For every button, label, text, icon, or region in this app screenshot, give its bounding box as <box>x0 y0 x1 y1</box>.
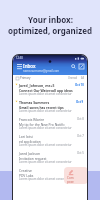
staticText: Oct 9 <box>76 100 84 104</box>
staticText: Lorem ipsum dolor sit amet consectetur e… <box>19 126 76 130</box>
button[interactable]: Compose <box>64 167 87 184</box>
staticText: Gmail saves has recent tips <box>19 105 64 109</box>
button[interactable]: Creative <box>13 166 87 183</box>
staticText: Compose <box>67 176 75 184</box>
staticText: Your inbox: <box>28 14 73 25</box>
button[interactable]: Thomas Summers <box>13 98 87 115</box>
staticText: Thomas Summers <box>19 100 50 105</box>
button[interactable]: Compose <box>77 62 85 70</box>
button[interactable]: Jared, Johnson, me+5 <box>13 81 87 98</box>
staticText: Unread <box>68 76 78 80</box>
button[interactable]: Jared Jackson <box>13 149 87 166</box>
staticText: Oct 5 <box>77 151 84 155</box>
button[interactable]: Francois Ribeire <box>13 115 87 132</box>
staticText: Inbox <box>23 63 36 69</box>
staticText: name.surname@gmail.com <box>23 69 60 73</box>
staticText: Lorem ipsum dolor sit amet consectetur e… <box>19 92 74 96</box>
staticText: All <box>81 76 84 80</box>
staticText: Lori lotsi <box>19 134 33 139</box>
button[interactable]: Search <box>69 62 77 70</box>
staticText: ed application <box>19 139 41 143</box>
staticText: Lorem ipsum dolor sit amet consectetur e… <box>19 143 76 147</box>
staticText: Francois Ribeire <box>19 117 45 122</box>
staticText: 12:30 <box>16 56 23 60</box>
staticText: Lorem ipsum dolor sit amet consectetur e… <box>19 160 76 164</box>
staticText: Jared, Johnson, me+5 <box>19 83 55 88</box>
staticText: Lorem ipsum dolor sit amet consectetur e… <box>19 177 76 181</box>
staticText: Oct 8 <box>77 117 84 121</box>
button[interactable]: Menu <box>15 62 23 70</box>
button[interactable]: Lori lotsi <box>13 132 87 149</box>
staticText: PDV Labs <box>19 173 34 177</box>
staticText: optimized, organized <box>8 25 92 36</box>
staticText: Invitation request <box>19 156 47 160</box>
staticText: Connect Our Watercall app ideas <box>19 88 73 92</box>
staticText: My tip for the New Pro Notific <box>19 122 65 126</box>
staticText: Oct 10 <box>75 83 84 87</box>
staticText: Oct 7 <box>77 134 84 138</box>
staticText: Primary <box>20 76 31 80</box>
staticText: Lorem ipsum dolor sit amet consectetur e… <box>19 109 75 113</box>
staticText: Creative <box>19 168 33 173</box>
staticText: Jared Jackson <box>19 151 41 156</box>
